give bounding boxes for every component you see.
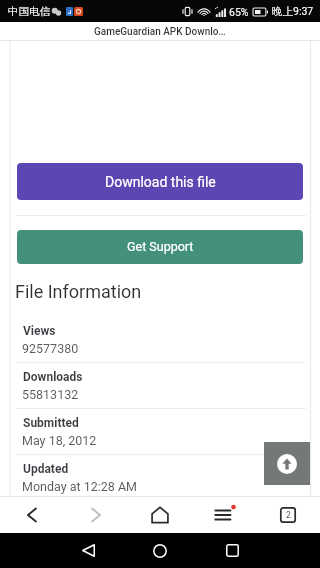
button[interactable]: Recents	[196, 533, 268, 568]
button[interactable]: Scroll to top	[264, 442, 310, 485]
staticText: 92577380	[22, 341, 79, 356]
button[interactable]: Get Support	[17, 230, 303, 264]
staticText: GameGuardian APK Downlo…	[94, 26, 226, 38]
staticText: Download this file	[105, 174, 216, 190]
button[interactable]: Downloads	[0, 362, 320, 408]
staticText: Submitted	[23, 416, 79, 430]
staticText: Get Support	[127, 239, 194, 254]
button[interactable]: Back	[0, 497, 64, 533]
button[interactable]: Tabs	[256, 497, 320, 533]
button[interactable]: Home	[128, 497, 192, 533]
button[interactable]: Home	[124, 533, 196, 568]
staticText: Updated	[23, 462, 69, 476]
button[interactable]: Back	[52, 533, 124, 568]
button[interactable]: Updated	[0, 454, 320, 496]
button[interactable]: Views	[0, 317, 320, 362]
button[interactable]: Forward	[64, 497, 128, 533]
staticText: Views	[23, 324, 56, 338]
staticText: 2	[286, 510, 291, 520]
staticText: 65%	[229, 6, 249, 18]
button[interactable]: Download this file	[17, 163, 303, 200]
button[interactable]: Submitted	[0, 408, 320, 454]
button[interactable]: Menu	[192, 497, 256, 533]
staticText: Downloads	[23, 370, 83, 384]
staticText: May 18, 2012	[22, 433, 97, 448]
staticText: J	[68, 8, 72, 15]
staticText: 晚上9:37	[272, 5, 314, 18]
staticText: File Information	[15, 281, 142, 302]
staticText: 55813132	[22, 387, 79, 402]
staticText: Monday at 12:28 AM	[22, 479, 138, 494]
staticText: 中国电信	[8, 5, 50, 18]
